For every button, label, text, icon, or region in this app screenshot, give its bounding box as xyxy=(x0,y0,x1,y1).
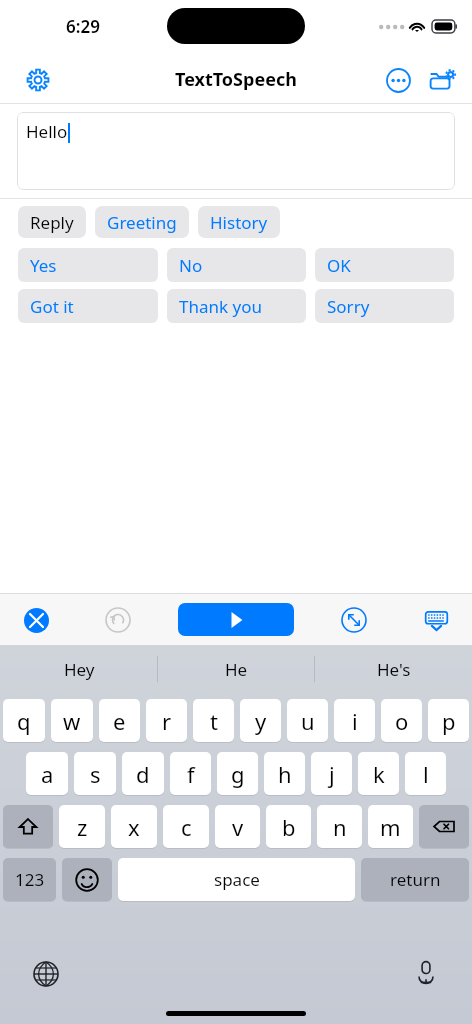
staticText: k xyxy=(373,759,385,789)
button[interactable]: He xyxy=(158,645,315,693)
button[interactable]: Settings xyxy=(14,56,62,103)
staticText: z xyxy=(77,812,88,842)
staticText: 123 xyxy=(15,868,45,891)
staticText: space xyxy=(214,868,260,891)
button[interactable]: Shift xyxy=(3,805,53,848)
button[interactable]: Sorry xyxy=(315,289,454,323)
staticText: o xyxy=(395,706,409,736)
staticText: Got it xyxy=(30,295,74,318)
button[interactable]: Manage folders xyxy=(420,58,464,102)
button[interactable]: v xyxy=(215,805,260,848)
staticText: t xyxy=(210,706,218,736)
staticText: Thank you xyxy=(179,295,262,318)
button[interactable]: d xyxy=(122,752,164,795)
button[interactable]: m xyxy=(368,805,413,848)
staticText: e xyxy=(113,706,126,736)
staticText: v xyxy=(232,812,244,842)
button[interactable]: Expand xyxy=(332,598,376,642)
staticText: Greeting xyxy=(107,211,177,234)
button[interactable]: c xyxy=(163,805,209,848)
staticText: TextToSpeech xyxy=(175,67,297,92)
staticText: He's xyxy=(377,658,411,681)
button[interactable]: Emoji xyxy=(62,858,112,901)
button[interactable]: Thank you xyxy=(167,289,306,323)
button[interactable]: g xyxy=(217,752,258,795)
staticText: g xyxy=(231,759,245,789)
button[interactable]: Backspace xyxy=(419,805,469,848)
button[interactable]: Clear text xyxy=(14,598,58,642)
button[interactable]: o xyxy=(381,699,422,742)
button[interactable]: x xyxy=(111,805,157,848)
button[interactable]: Reply xyxy=(18,206,86,238)
button[interactable]: Got it xyxy=(18,289,158,323)
button[interactable]: He's xyxy=(315,645,472,693)
staticText: u xyxy=(301,706,315,736)
button[interactable]: p xyxy=(428,699,469,742)
button[interactable]: return xyxy=(361,858,469,901)
button[interactable]: Hide keyboard xyxy=(414,598,458,642)
staticText: Sorry xyxy=(327,295,370,318)
staticText: j xyxy=(329,759,335,789)
staticText: h xyxy=(278,759,292,789)
button[interactable]: q xyxy=(3,699,45,742)
button[interactable]: s xyxy=(74,752,116,795)
button[interactable]: f xyxy=(170,752,211,795)
button[interactable]: y xyxy=(240,699,281,742)
staticText: Yes xyxy=(30,254,57,277)
staticText: f xyxy=(187,759,195,789)
staticText: y xyxy=(255,706,267,736)
button[interactable]: Undo xyxy=(96,598,140,642)
staticText: History xyxy=(210,211,268,234)
button[interactable]: e xyxy=(99,699,140,742)
staticText: Hey xyxy=(64,658,95,681)
button[interactable]: a xyxy=(26,752,68,795)
button[interactable]: More options xyxy=(376,58,420,102)
staticText: n xyxy=(333,812,347,842)
button[interactable]: j xyxy=(311,752,352,795)
staticText: Hello xyxy=(26,120,68,143)
button[interactable]: t xyxy=(193,699,234,742)
button[interactable]: History xyxy=(198,206,280,238)
staticText: c xyxy=(181,812,192,842)
staticText: w xyxy=(63,706,81,736)
button[interactable]: Yes xyxy=(18,248,158,282)
button[interactable]: Hey xyxy=(0,645,158,693)
staticText: 6:29 xyxy=(66,15,100,38)
button[interactable]: k xyxy=(358,752,399,795)
staticText: m xyxy=(380,812,401,842)
button[interactable]: Greeting xyxy=(95,206,189,238)
button[interactable]: h xyxy=(264,752,305,795)
button[interactable]: Dictate xyxy=(406,952,446,992)
staticText: return xyxy=(390,868,441,891)
staticText: i xyxy=(352,706,358,736)
staticText: p xyxy=(442,706,456,736)
staticText: OK xyxy=(327,254,351,277)
button[interactable]: l xyxy=(405,752,446,795)
button[interactable]: i xyxy=(334,699,375,742)
staticText: s xyxy=(90,759,101,789)
button[interactable]: b xyxy=(266,805,311,848)
staticText: He xyxy=(225,658,248,681)
staticText: l xyxy=(423,759,429,789)
button[interactable]: Change keyboard language xyxy=(26,954,66,994)
staticText: a xyxy=(41,759,54,789)
staticText: No xyxy=(179,254,203,277)
button[interactable]: No xyxy=(167,248,306,282)
button[interactable]: r xyxy=(146,699,187,742)
button[interactable]: OK xyxy=(315,248,454,282)
staticText: r xyxy=(162,706,172,736)
button[interactable]: Hello xyxy=(17,112,455,190)
staticText: q xyxy=(17,706,31,736)
staticText: Reply xyxy=(30,211,74,234)
button[interactable]: n xyxy=(317,805,362,848)
staticText: b xyxy=(282,812,296,842)
button[interactable]: Speak xyxy=(178,603,294,636)
staticText: x xyxy=(128,812,140,842)
button[interactable]: 123 xyxy=(3,858,56,901)
staticText: d xyxy=(136,759,150,789)
button[interactable]: w xyxy=(51,699,93,742)
button[interactable]: z xyxy=(59,805,105,848)
button[interactable]: u xyxy=(287,699,328,742)
button[interactable]: space xyxy=(118,858,355,901)
